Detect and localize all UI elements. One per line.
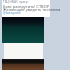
staticText: @hotagodot	[3, 11, 21, 15]
button[interactable]	[2, 0, 50, 17]
staticText: Бакс раскрутить! СТВОР	[3, 4, 50, 9]
staticText: ТВЦ НВЫС прогр	[3, 0, 28, 4]
staticText: Желающие увидеть тосканем	[3, 7, 61, 12]
button[interactable]	[2, 17, 44, 70]
